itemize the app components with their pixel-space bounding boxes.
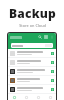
button[interactable]: Backup item: [51, 61, 54, 64]
button[interactable]: Tab 3: [32, 94, 44, 100]
staticText: Backup: [9, 5, 56, 21]
button[interactable]: Backup item: [8, 76, 56, 84]
staticText: Store on Cloud: [19, 23, 46, 28]
button[interactable]: Backup item: [51, 88, 54, 91]
button[interactable]: Backup item: [8, 58, 56, 66]
button[interactable]: Backup item: [51, 52, 54, 55]
button[interactable]: Backup item: [51, 70, 54, 73]
button[interactable]: More options: [50, 35, 54, 39]
button[interactable]: Tab 4: [44, 94, 56, 100]
button[interactable]: Layout: [44, 35, 48, 39]
button[interactable]: Backup item: [8, 49, 56, 57]
button[interactable]: Search: [38, 35, 42, 39]
button[interactable]: Tab 2: [20, 94, 32, 100]
button[interactable]: Backup item: [8, 85, 56, 93]
button[interactable]: Backup item: [8, 67, 56, 75]
button[interactable]: Backup item: [51, 79, 54, 82]
button[interactable]: Tab 1: [8, 94, 20, 100]
button[interactable]: [11, 43, 53, 48]
